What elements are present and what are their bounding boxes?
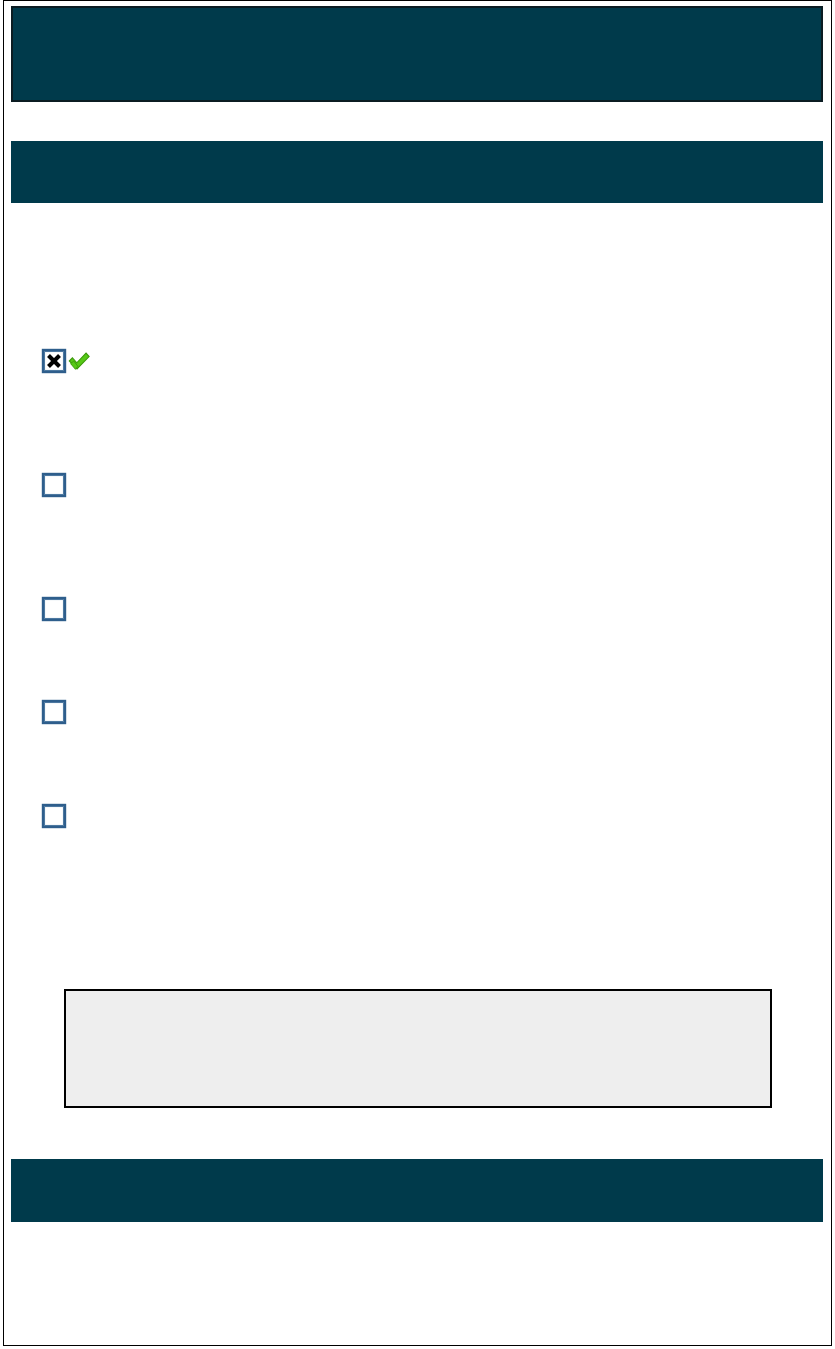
button[interactable]: Unchecked option bbox=[42, 804, 66, 828]
button[interactable]: Checked option bbox=[42, 349, 66, 373]
button[interactable]: Comments text area bbox=[64, 989, 772, 1108]
button[interactable]: Document header banner bbox=[11, 6, 823, 102]
button[interactable]: Unchecked option bbox=[42, 597, 66, 621]
button[interactable]: Approved bbox=[68, 350, 90, 372]
button[interactable]: Unchecked option bbox=[42, 700, 66, 724]
button[interactable]: Unchecked option bbox=[42, 473, 66, 497]
